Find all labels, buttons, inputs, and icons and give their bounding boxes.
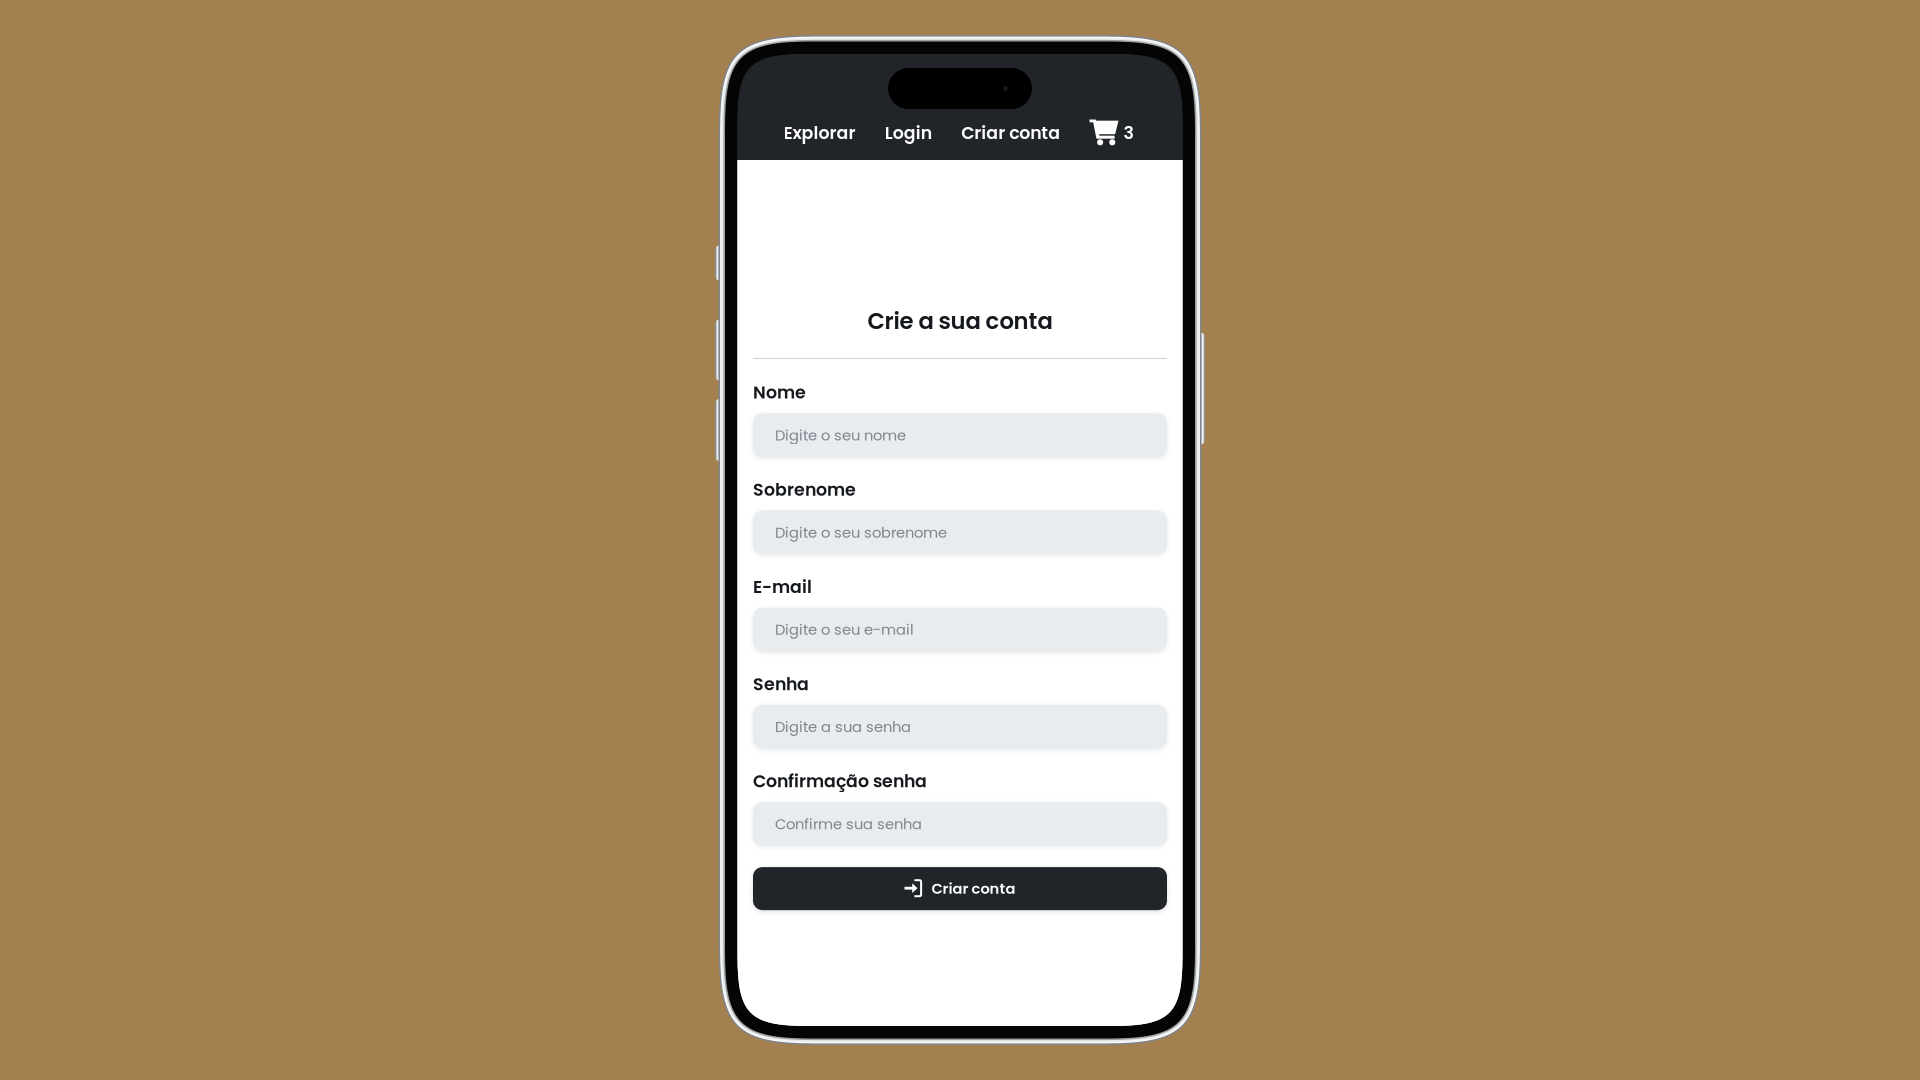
staticText: Digite o seu nome: [775, 425, 906, 445]
button[interactable]: Digite a sua senha: [753, 705, 1167, 749]
button[interactable]: Digite o seu e-mail: [753, 608, 1167, 652]
button[interactable]: Digite o seu nome: [753, 413, 1167, 457]
button[interactable]: Criar conta: [753, 867, 1167, 910]
button[interactable]: Digite o seu sobrenome: [753, 510, 1167, 554]
button[interactable]: Criar conta: [961, 122, 1060, 144]
staticText: Criar conta: [931, 878, 1015, 899]
button[interactable]: Confirme sua senha: [753, 802, 1167, 846]
button[interactable]: Login: [885, 122, 932, 144]
staticText: Digite a sua senha: [775, 717, 911, 737]
staticText: Explorar: [783, 121, 855, 145]
staticText: Digite o seu e-mail: [775, 619, 914, 640]
staticText: 3: [1123, 121, 1133, 145]
staticText: Criar conta: [961, 121, 1060, 145]
staticText: Sobrenome: [753, 478, 856, 502]
staticText: Confirmação senha: [753, 769, 927, 793]
staticText: Nome: [753, 380, 806, 405]
staticText: Digite o seu sobrenome: [775, 522, 947, 543]
button[interactable]: Carrinho, 3 itens: [1089, 119, 1133, 146]
staticText: Senha: [753, 672, 809, 696]
staticText: Confirme sua senha: [775, 814, 922, 834]
button[interactable]: Explorar: [783, 122, 855, 144]
staticText: Login: [885, 121, 932, 145]
staticText: E-mail: [753, 575, 812, 599]
staticText: Crie a sua conta: [867, 305, 1052, 337]
